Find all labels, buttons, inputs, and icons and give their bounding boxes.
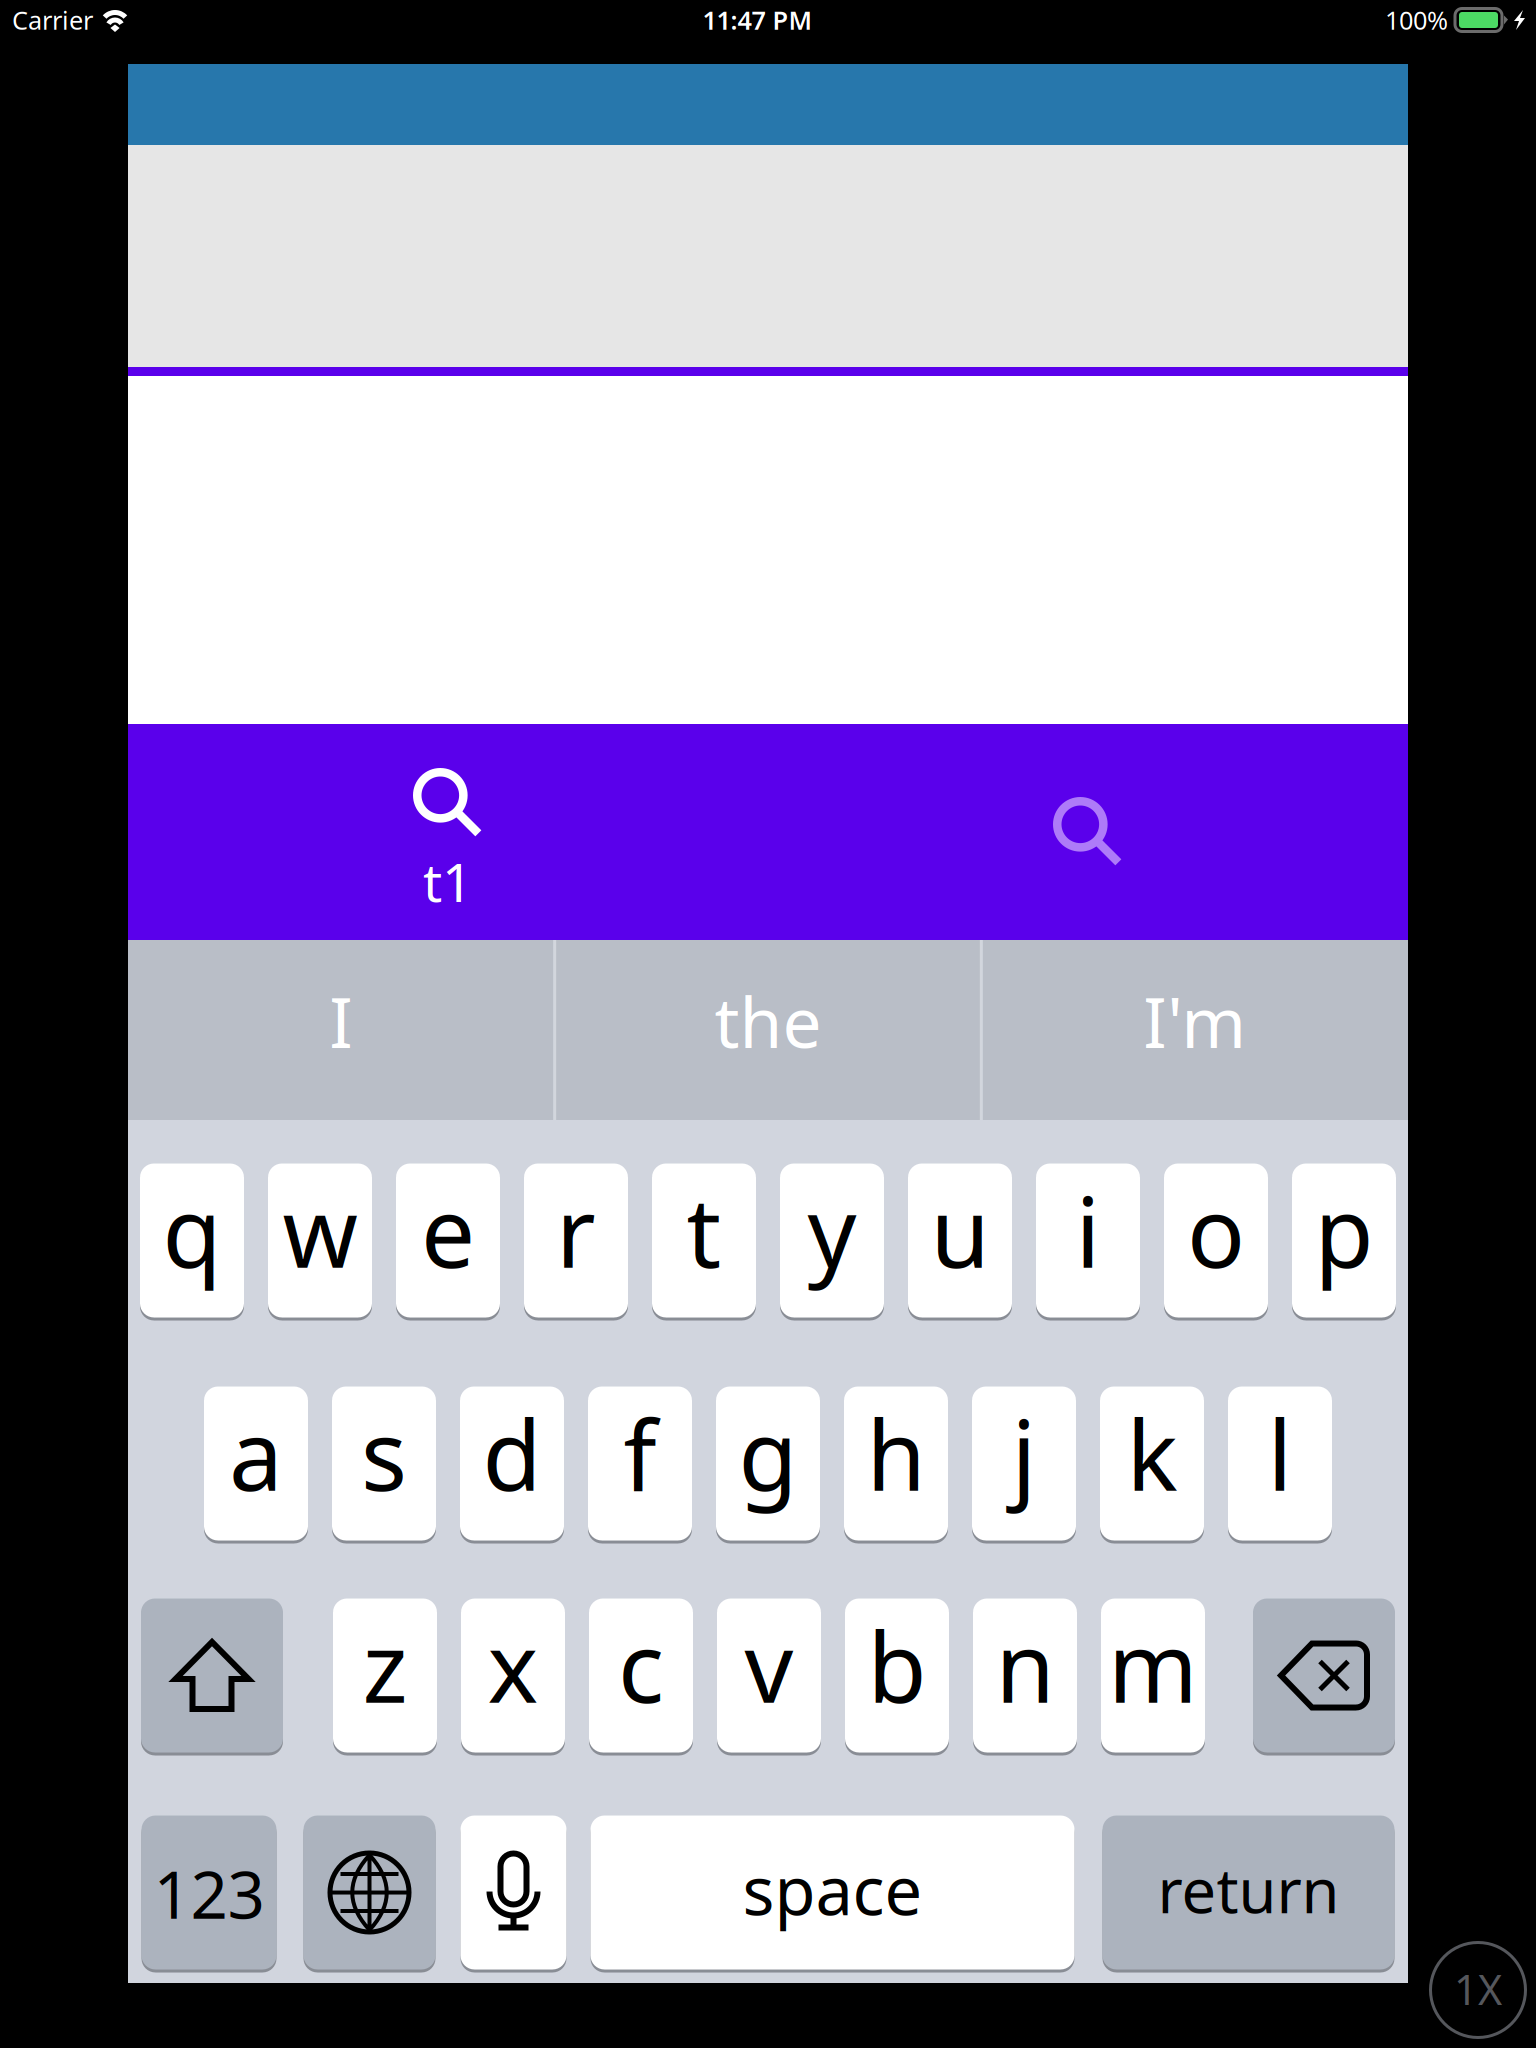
staticText: x [487,1602,538,1729]
staticText: t1 [423,846,473,917]
staticText: w [282,1167,357,1294]
staticText: q [162,1167,221,1294]
staticText: g [738,1390,797,1517]
button[interactable]: w [268,1162,372,1319]
button[interactable]: I [128,940,555,1120]
staticText: a [229,1390,283,1517]
staticText: d [482,1390,541,1517]
staticText: v [744,1602,793,1729]
staticText: 100% [1385,3,1448,37]
button[interactable]: Dictation [460,1814,566,1971]
button[interactable]: s [332,1385,436,1542]
button[interactable]: Shift [141,1597,283,1754]
staticText: o [1187,1167,1245,1294]
button[interactable]: d [460,1385,564,1542]
button[interactable]: f [588,1385,692,1542]
staticText: Carrier [12,3,93,37]
button[interactable]: the [555,940,981,1120]
button[interactable]: h [844,1385,948,1542]
button[interactable]: Search [768,724,1408,940]
button[interactable]: t1 [128,724,768,940]
button[interactable]: o [1164,1162,1268,1319]
button[interactable]: I'm [981,940,1408,1120]
staticText: s [361,1390,407,1517]
button[interactable]: 123 [141,1814,276,1971]
staticText: z [362,1602,407,1729]
button[interactable]: Delete [1253,1597,1395,1754]
staticText: k [1126,1390,1177,1517]
button[interactable]: i [1036,1162,1140,1319]
staticText: i [1075,1167,1100,1294]
staticText: m [1108,1602,1198,1729]
button[interactable]: b [845,1597,949,1754]
button[interactable]: t [652,1162,756,1319]
staticText: u [930,1167,989,1294]
button[interactable]: p [1292,1162,1396,1319]
button[interactable]: j [972,1385,1076,1542]
button[interactable]: m [1101,1597,1205,1754]
staticText: y [807,1167,856,1294]
staticText: r [556,1167,596,1294]
button[interactable]: x [461,1597,565,1754]
staticText: j [1011,1390,1036,1517]
staticText: e [421,1167,475,1294]
button[interactable]: e [396,1162,500,1319]
button[interactable]: l [1228,1385,1332,1542]
button[interactable]: Next keyboard [303,1814,435,1971]
button[interactable]: z [333,1597,437,1754]
staticText: c [618,1602,664,1729]
staticText: 123 [153,1850,264,1937]
staticText: I [329,975,353,1067]
staticText: l [1267,1390,1292,1517]
staticText: b [867,1602,926,1729]
button[interactable]: q [140,1162,244,1319]
button[interactable]: space [590,1814,1074,1971]
button[interactable]: g [716,1385,820,1542]
staticText: 11:47 PM [702,3,812,37]
staticText: h [866,1390,925,1517]
button[interactable]: n [973,1597,1077,1754]
staticText: space [742,1845,922,1934]
button[interactable]: y [780,1162,884,1319]
button[interactable]: k [1100,1385,1204,1542]
staticText: f [623,1390,656,1517]
button[interactable]: a [204,1385,308,1542]
button[interactable]: u [908,1162,1012,1319]
staticText: I'm [1143,975,1246,1067]
staticText: the [714,975,821,1067]
staticText: 1X [1454,1962,1502,2016]
staticText: p [1314,1167,1373,1294]
staticText: n [995,1602,1054,1729]
staticText: return [1157,1849,1339,1930]
staticText: t [686,1167,721,1294]
button[interactable]: v [717,1597,821,1754]
button[interactable]: return [1102,1814,1394,1971]
button[interactable]: r [524,1162,628,1319]
button[interactable]: c [589,1597,693,1754]
